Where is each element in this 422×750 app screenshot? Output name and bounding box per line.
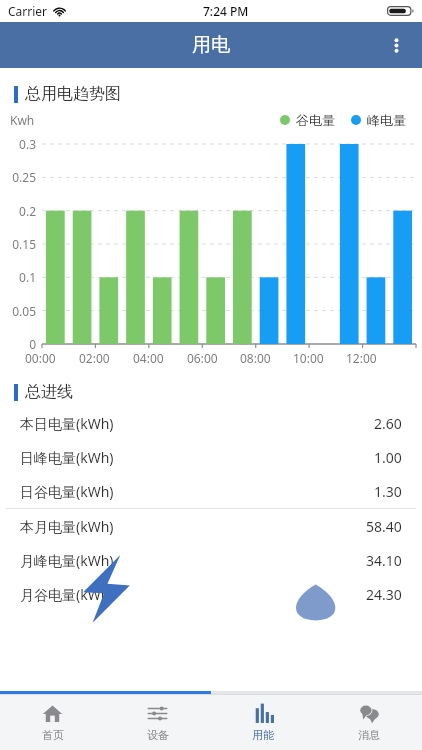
- button[interactable]: 首页: [0, 695, 105, 750]
- staticText: 峰电量: [367, 112, 406, 128]
- staticText: 34.10: [366, 551, 402, 570]
- button[interactable]: 日谷电量(kWh): [0, 474, 422, 508]
- staticText: 消息: [358, 728, 380, 742]
- button[interactable]: 设备: [105, 695, 210, 750]
- staticText: Kwh: [10, 112, 35, 128]
- staticText: 58.40: [366, 517, 402, 536]
- staticText: 7:24 PM: [203, 3, 249, 19]
- staticText: 2.60: [374, 414, 402, 433]
- staticText: 02:00: [79, 350, 110, 366]
- staticText: 0: [0, 336, 36, 352]
- staticText: 月谷电量(kWh): [20, 585, 114, 604]
- staticText: 用电: [192, 33, 230, 57]
- button[interactable]: More options: [376, 25, 416, 65]
- staticText: 04:00: [133, 350, 164, 366]
- staticText: 总进线: [25, 382, 73, 402]
- staticText: 12:00: [346, 350, 377, 366]
- button[interactable]: 月峰电量(kWh): [0, 543, 422, 577]
- staticText: 谷电量: [296, 112, 335, 128]
- staticText: 10:00: [293, 350, 324, 366]
- staticText: 总用电趋势图: [25, 84, 121, 104]
- staticText: 0.1: [0, 269, 36, 285]
- staticText: 0.15: [0, 236, 36, 252]
- staticText: 日峰电量(kWh): [20, 448, 114, 467]
- button[interactable]: 日峰电量(kWh): [0, 440, 422, 474]
- staticText: 本月电量(kWh): [20, 517, 114, 536]
- button[interactable]: 消息: [316, 695, 422, 750]
- button[interactable]: 本日电量(kWh): [0, 406, 422, 440]
- button[interactable]: 月谷电量(kWh): [0, 577, 422, 611]
- staticText: 06:00: [187, 350, 218, 366]
- staticText: 日谷电量(kWh): [20, 482, 114, 501]
- staticText: 0.25: [0, 169, 36, 185]
- staticText: 00:00: [25, 350, 56, 366]
- staticText: 用能: [252, 728, 274, 742]
- staticText: 设备: [147, 728, 169, 742]
- staticText: Carrier: [8, 3, 48, 19]
- staticText: 1.00: [374, 448, 402, 467]
- staticText: 本日电量(kWh): [20, 414, 114, 433]
- staticText: 24.30: [366, 585, 402, 604]
- staticText: 0.2: [0, 203, 36, 219]
- staticText: 1.30: [374, 482, 402, 501]
- button[interactable]: 用能: [210, 695, 316, 750]
- staticText: 0.05: [0, 303, 36, 319]
- staticText: 08:00: [240, 350, 271, 366]
- staticText: 0.3: [0, 136, 36, 152]
- button[interactable]: 本月电量(kWh): [0, 509, 422, 543]
- staticText: 月峰电量(kWh): [20, 551, 114, 570]
- staticText: 首页: [42, 728, 64, 742]
